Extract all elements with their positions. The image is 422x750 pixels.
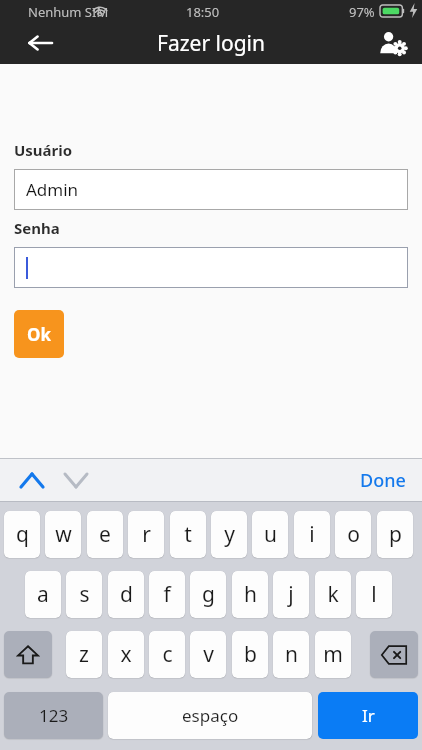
button[interactable]: Done: [352, 459, 414, 501]
staticText: p: [389, 520, 402, 549]
button[interactable]: l: [356, 571, 392, 618]
button[interactable]: [14, 247, 408, 288]
button[interactable]: Ok: [14, 310, 64, 358]
staticText: l: [371, 580, 377, 609]
button[interactable]: w: [45, 511, 81, 558]
button[interactable]: q: [4, 511, 40, 558]
button[interactable]: p: [377, 511, 413, 558]
staticText: x: [120, 640, 132, 669]
button[interactable]: k: [315, 571, 351, 618]
staticText: d: [120, 580, 133, 609]
button[interactable]: u: [252, 511, 288, 558]
button[interactable]: Configurações do usuário: [366, 22, 416, 64]
staticText: espaço: [182, 704, 239, 727]
staticText: g: [202, 580, 215, 609]
staticText: 123: [39, 704, 69, 727]
button[interactable]: espaço: [108, 692, 312, 739]
staticText: f: [163, 580, 171, 609]
staticText: Done: [360, 468, 406, 493]
button[interactable]: m: [315, 631, 351, 678]
button[interactable]: d: [108, 571, 144, 618]
staticText: w: [55, 520, 72, 549]
button[interactable]: o: [335, 511, 371, 558]
staticText: j: [288, 580, 294, 609]
button[interactable]: y: [211, 511, 247, 558]
button[interactable]: Ir: [318, 692, 418, 739]
staticText: s: [79, 580, 90, 609]
staticText: a: [37, 580, 49, 609]
button[interactable]: r: [128, 511, 164, 558]
button[interactable]: v: [190, 631, 226, 678]
staticText: n: [285, 640, 298, 669]
staticText: 97%: [349, 3, 375, 21]
staticText: Fazer login: [157, 29, 265, 58]
button[interactable]: f: [149, 571, 185, 618]
staticText: 18:50: [186, 3, 220, 21]
staticText: o: [347, 520, 360, 549]
button[interactable]: Shift: [4, 631, 52, 678]
staticText: v: [203, 640, 214, 669]
button[interactable]: e: [87, 511, 123, 558]
button[interactable]: s: [66, 571, 102, 618]
button[interactable]: Campo anterior: [10, 459, 54, 501]
button[interactable]: i: [294, 511, 330, 558]
button[interactable]: Voltar: [16, 22, 64, 64]
staticText: Admin: [26, 178, 79, 201]
button[interactable]: b: [232, 631, 268, 678]
staticText: t: [184, 520, 192, 549]
staticText: u: [264, 520, 277, 549]
staticText: r: [142, 520, 151, 549]
button[interactable]: a: [25, 571, 61, 618]
button[interactable]: Admin: [14, 169, 408, 210]
staticText: c: [162, 640, 173, 669]
button[interactable]: h: [232, 571, 268, 618]
button[interactable]: c: [149, 631, 185, 678]
staticText: Ok: [27, 323, 51, 346]
staticText: Usuário: [14, 140, 73, 160]
staticText: m: [323, 640, 343, 669]
button[interactable]: g: [190, 571, 226, 618]
button[interactable]: n: [273, 631, 309, 678]
staticText: y: [224, 520, 235, 549]
staticText: e: [99, 520, 111, 549]
staticText: k: [327, 580, 339, 609]
staticText: b: [244, 640, 257, 669]
button[interactable]: Próximo campo: [54, 459, 98, 501]
button[interactable]: x: [108, 631, 144, 678]
staticText: h: [244, 580, 257, 609]
staticText: z: [79, 640, 89, 669]
staticText: i: [309, 520, 315, 549]
staticText: Nenhum SIM: [28, 3, 109, 21]
button[interactable]: Números: [4, 692, 103, 739]
staticText: q: [16, 520, 29, 549]
staticText: Senha: [14, 218, 60, 238]
staticText: Ir: [362, 704, 375, 727]
button[interactable]: Apagar: [370, 631, 418, 678]
button[interactable]: t: [170, 511, 206, 558]
button[interactable]: j: [273, 571, 309, 618]
button[interactable]: z: [66, 631, 102, 678]
